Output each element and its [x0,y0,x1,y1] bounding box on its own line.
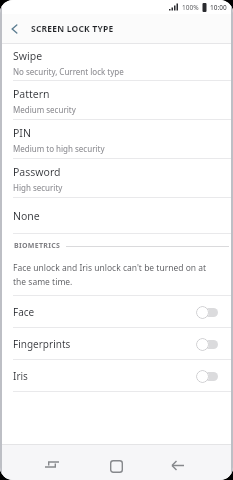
button[interactable] [38,450,66,478]
button[interactable]: Face [0,296,233,328]
staticText: Face [13,305,35,319]
staticText: BIOMETRICS [14,241,61,251]
staticText: High security [13,182,63,193]
button[interactable]: Iris [0,360,233,392]
button[interactable] [164,451,192,479]
button[interactable]: Password [0,159,233,198]
staticText: Medium security [13,104,76,115]
button[interactable]: Swipe [0,44,233,81]
button[interactable] [0,14,29,43]
staticText: Medium to high security [13,143,105,154]
button[interactable]: Pattern [0,81,233,120]
staticText: Pattern [13,87,50,101]
staticText: 10:00 [210,3,227,12]
staticText: SCREEN LOCK TYPE [31,23,114,35]
staticText: Fingerprints [13,337,71,351]
staticText: None [13,209,40,223]
button[interactable] [102,452,130,480]
staticText: 100% [182,3,199,12]
staticText: No security, Current lock type [13,66,124,77]
button[interactable]: None [0,198,233,234]
button[interactable]: PIN [0,120,233,159]
staticText: PIN [13,126,31,140]
staticText: Swipe [13,49,43,63]
staticText: Password [13,165,61,179]
staticText: Face unlock and Iris unlock can't be tur… [13,262,207,287]
button[interactable]: Fingerprints [0,328,233,360]
staticText: Iris [13,369,28,383]
